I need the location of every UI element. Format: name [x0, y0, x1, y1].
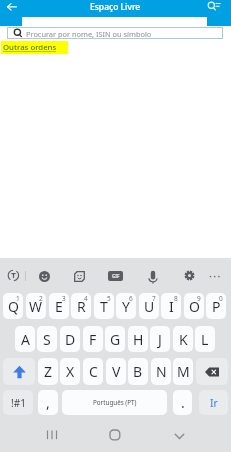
staticText: L	[201, 330, 209, 349]
staticText: 4	[84, 294, 88, 303]
staticText: F	[89, 330, 97, 349]
staticText: P	[212, 297, 221, 316]
button[interactable]: C	[83, 358, 103, 385]
staticText: 2	[39, 294, 43, 303]
button[interactable]: Outras ordens	[1, 41, 68, 54]
staticText: 6	[129, 294, 133, 303]
staticText: Português (PT)	[93, 398, 137, 407]
button[interactable]: Q	[3, 293, 23, 319]
staticText: V	[112, 362, 121, 381]
staticText: ,	[46, 393, 50, 412]
staticText: S	[43, 330, 51, 349]
button[interactable]: Português (PT)	[62, 390, 167, 415]
staticText: Z	[44, 362, 53, 381]
button[interactable]: Y	[116, 293, 136, 319]
button[interactable]: X	[60, 358, 80, 385]
button[interactable]: E	[49, 293, 69, 319]
button[interactable]: U	[139, 293, 159, 319]
button[interactable]	[7, 269, 20, 282]
button[interactable]	[174, 431, 186, 441]
staticText: I	[169, 297, 174, 316]
button[interactable]	[45, 429, 59, 441]
staticText: .	[181, 393, 185, 412]
button[interactable]: G	[105, 326, 125, 352]
staticText: B	[133, 362, 143, 381]
staticText: N	[156, 362, 167, 381]
staticText: 8	[174, 294, 178, 303]
button[interactable]	[205, 0, 225, 14]
button[interactable]	[147, 270, 159, 284]
staticText: H	[133, 330, 144, 349]
button[interactable]: M	[173, 358, 193, 385]
staticText: J	[158, 330, 162, 349]
staticText: O	[189, 297, 200, 316]
staticText: 3	[62, 294, 66, 303]
button[interactable]: Procurar por nome, ISIN ou símbolo	[7, 27, 223, 39]
staticText: D	[65, 330, 76, 349]
staticText: Q	[8, 297, 19, 316]
staticText: Procurar por nome, ISIN ou símbolo	[26, 29, 152, 39]
button[interactable]	[74, 271, 85, 282]
staticText: T	[100, 297, 108, 316]
staticText: M	[177, 362, 190, 381]
button[interactable]: V	[106, 358, 126, 385]
button[interactable]: Z	[38, 358, 58, 385]
staticText: R	[77, 297, 86, 316]
button[interactable]: .	[173, 390, 192, 415]
button[interactable]: D	[60, 326, 80, 352]
button[interactable]: S	[37, 326, 57, 352]
staticText: Ir	[210, 396, 218, 410]
staticText: K	[179, 330, 188, 349]
button[interactable]: P	[206, 293, 226, 319]
staticText: GIF	[112, 273, 120, 279]
button[interactable]: L	[195, 326, 215, 352]
button[interactable]: O	[184, 293, 204, 319]
button[interactable]: F	[83, 326, 103, 352]
button[interactable]: H	[128, 326, 148, 352]
button[interactable]: R	[71, 293, 91, 319]
staticText: !#1	[11, 396, 26, 410]
staticText: Outras ordens	[3, 42, 57, 53]
staticText: G	[110, 330, 121, 349]
button[interactable]: K	[173, 326, 193, 352]
staticText: 7	[152, 294, 156, 303]
button[interactable]	[3, 358, 35, 385]
button[interactable]: !#1	[3, 390, 33, 415]
staticText: 9	[197, 294, 201, 303]
staticText: X	[66, 362, 75, 381]
button[interactable]: B	[128, 358, 148, 385]
button[interactable]	[109, 429, 121, 441]
button[interactable]: Ir	[199, 390, 228, 415]
button[interactable]	[39, 271, 50, 282]
button[interactable]: A	[15, 326, 35, 352]
button[interactable]	[184, 270, 195, 281]
button[interactable]: I	[161, 293, 181, 319]
button[interactable]: W	[26, 293, 46, 319]
button[interactable]: ,	[38, 390, 58, 415]
button[interactable]	[208, 273, 221, 280]
staticText: A	[21, 330, 30, 349]
staticText: 0	[219, 294, 223, 303]
button[interactable]: N	[151, 358, 171, 385]
staticText: W	[29, 297, 43, 316]
button[interactable]: GIF	[108, 271, 123, 281]
button[interactable]: T	[94, 293, 114, 319]
staticText: E	[55, 297, 63, 316]
button[interactable]: J	[150, 326, 170, 352]
staticText: U	[144, 297, 155, 316]
staticText: 5	[107, 294, 111, 303]
staticText: Espaço Livre	[90, 1, 141, 13]
button[interactable]	[4, 1, 20, 14]
staticText: C	[89, 362, 98, 381]
staticText: 1	[16, 294, 20, 303]
staticText: Y	[122, 297, 130, 316]
button[interactable]	[196, 358, 228, 385]
